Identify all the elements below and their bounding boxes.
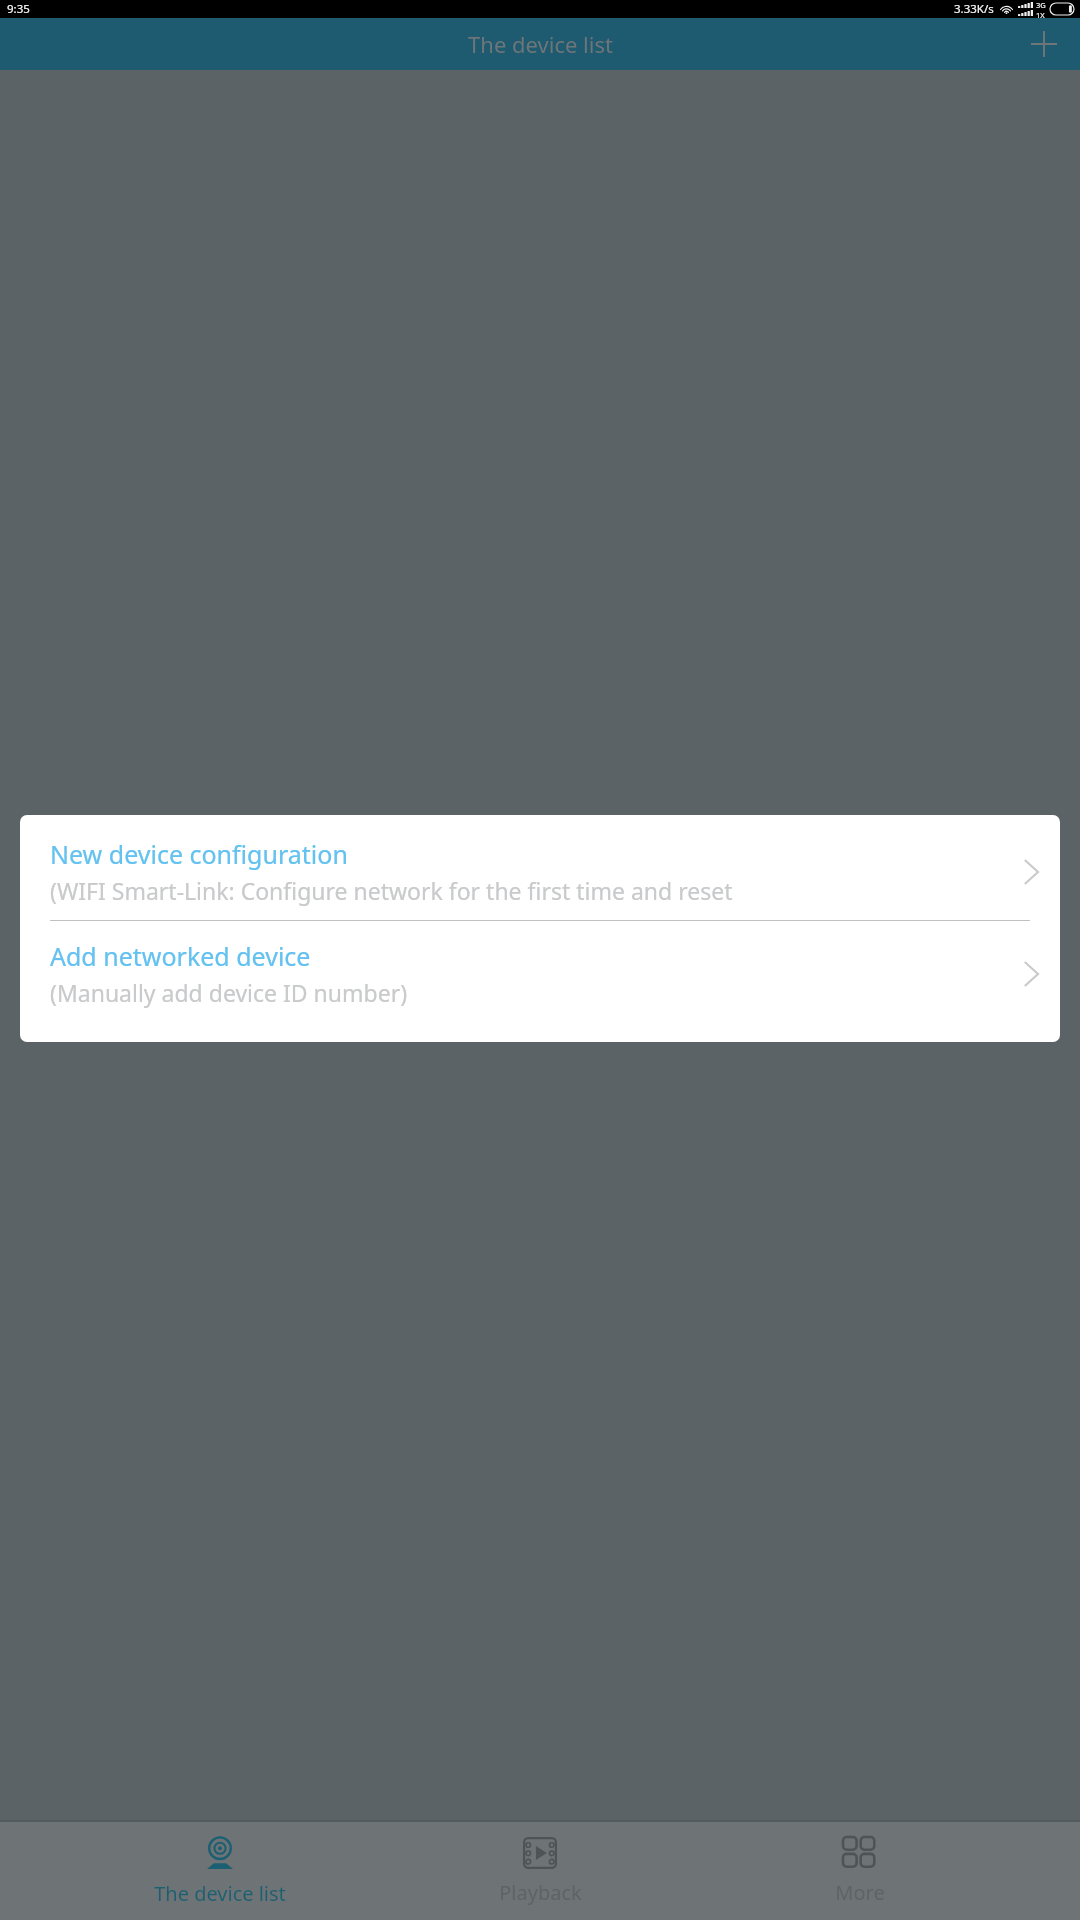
staticText: 3.33K/s [954,1,994,17]
button[interactable]: The device list [120,1828,320,1915]
button[interactable]: New device configuration [20,815,1060,920]
staticText: More [835,1879,885,1906]
staticText: Playback [499,1879,582,1906]
staticText: (Manually add device ID number) [50,977,408,1008]
button[interactable]: Add networked device [20,921,1060,1042]
button[interactable]: Playback [440,1829,640,1914]
staticText: The device list [468,29,613,59]
staticText: (WIFI Smart-Link: Configure network for … [50,875,733,906]
staticText: 9:35 [7,1,30,17]
button[interactable]: Add device [1022,22,1066,66]
staticText: Add networked device [50,939,311,973]
button[interactable]: More [760,1829,960,1914]
staticText: 3G [1036,0,1046,10]
staticText: New device configuration [50,837,348,871]
staticText: 1X [1036,10,1045,18]
staticText: The device list [154,1880,286,1907]
